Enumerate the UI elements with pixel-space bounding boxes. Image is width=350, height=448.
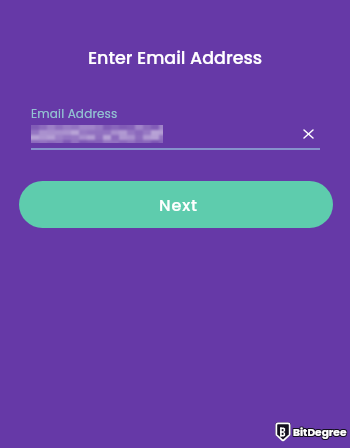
staticText: BitDegree <box>292 426 346 441</box>
button[interactable]: Next <box>19 181 333 228</box>
staticText: Enter Email Address <box>0 46 350 71</box>
staticText: Next <box>159 194 198 216</box>
staticText: BitDegree <box>293 424 347 439</box>
staticText: BitDegree <box>294 425 348 440</box>
button[interactable]: Email Address <box>19 98 333 152</box>
staticText: BitDegree <box>292 425 346 440</box>
staticText: BitDegree <box>292 424 346 439</box>
staticText: BitDegree <box>293 425 347 440</box>
staticText: BitDegree <box>293 426 347 441</box>
staticText: BitDegree <box>294 426 348 441</box>
staticText: Email Address <box>31 105 118 122</box>
button[interactable]: Clear email address <box>296 122 320 146</box>
staticText: BitDegree <box>294 424 348 439</box>
